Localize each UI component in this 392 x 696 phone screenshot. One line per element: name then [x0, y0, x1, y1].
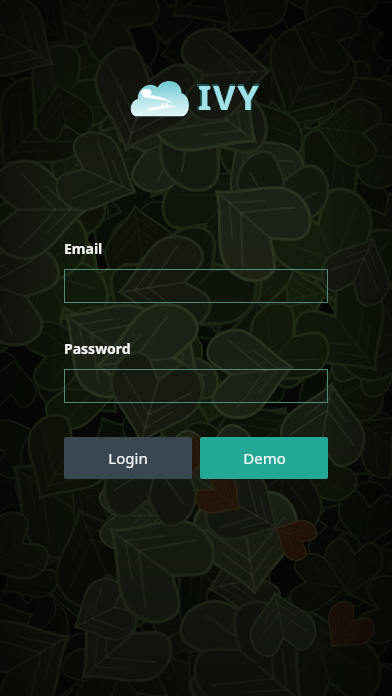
- button[interactable]: Login: [64, 437, 192, 479]
- button[interactable]: Password input field: [64, 369, 328, 403]
- staticText: Login: [108, 448, 148, 468]
- staticText: IVY: [196, 72, 262, 121]
- staticText: IVY: [198, 74, 261, 120]
- other: IVY logo: [0, 72, 392, 121]
- button[interactable]: Demo: [200, 437, 328, 479]
- staticText: Email: [64, 239, 103, 258]
- staticText: Demo: [243, 448, 286, 468]
- staticText: Password: [64, 339, 131, 358]
- button[interactable]: Email input field: [64, 269, 328, 303]
